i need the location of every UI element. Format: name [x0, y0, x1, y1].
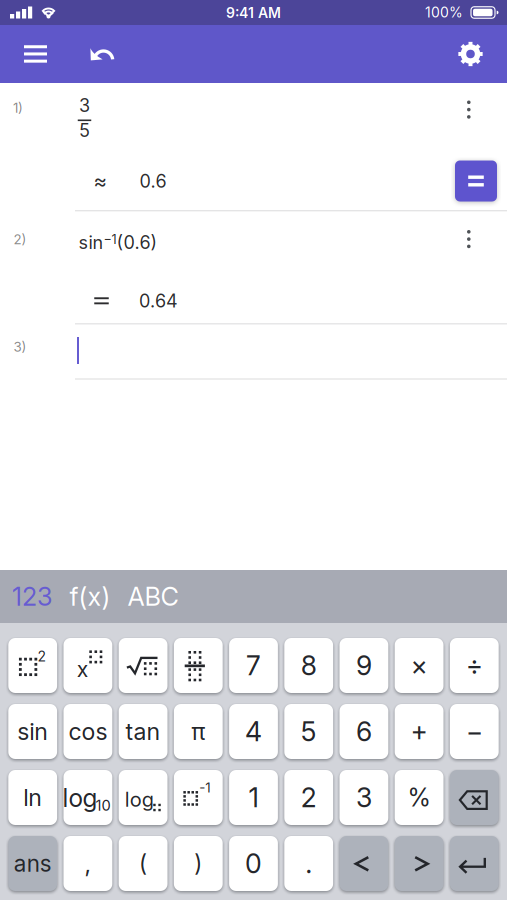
staticText: 1)	[13, 100, 23, 116]
staticText: 7	[246, 649, 261, 682]
button[interactable]: 5	[284, 704, 333, 759]
button[interactable]: 123	[6, 568, 59, 625]
button[interactable]: tan	[119, 704, 167, 759]
button[interactable]: log base 10	[63, 770, 112, 825]
staticText: 8	[301, 649, 317, 682]
staticText: 9:41 AM	[226, 4, 281, 21]
button[interactable]: x squared	[8, 638, 57, 693]
button[interactable]: ×	[395, 638, 443, 693]
button[interactable]: 2	[284, 770, 333, 825]
staticText: 9	[356, 649, 372, 682]
button[interactable]: log base b	[119, 770, 167, 825]
button[interactable]: Delete	[450, 770, 499, 825]
button[interactable]: (	[119, 836, 167, 891]
button[interactable]: ln	[8, 770, 57, 825]
button[interactable]: sin	[8, 704, 57, 759]
staticText: )	[194, 850, 202, 877]
button[interactable]: 3	[339, 770, 388, 825]
button[interactable]: 4	[229, 704, 278, 759]
staticText: 2	[301, 781, 317, 814]
button[interactable]: fraction	[174, 638, 223, 693]
button[interactable]: Move left	[339, 836, 388, 891]
staticText: 123	[12, 581, 53, 612]
staticText: 5	[301, 715, 317, 748]
button[interactable]: 9	[339, 638, 388, 693]
staticText: cos	[68, 717, 107, 746]
staticText: 3	[79, 95, 90, 116]
staticText: x	[77, 656, 89, 682]
button[interactable]: .	[284, 836, 333, 891]
staticText: 10	[96, 797, 111, 814]
staticText: 100%	[425, 4, 463, 21]
staticText: −	[466, 715, 483, 748]
staticText: 0.64	[139, 290, 178, 312]
button[interactable]: Row options	[457, 218, 482, 262]
button[interactable]: Menu	[12, 31, 59, 77]
staticText: log	[62, 783, 97, 813]
staticText: sin−1(0.6)	[78, 232, 157, 253]
staticText: (	[139, 850, 147, 877]
staticText: 0	[245, 847, 262, 880]
button[interactable]: Undo	[78, 31, 128, 77]
button[interactable]: square root	[119, 638, 167, 693]
staticText: tan	[126, 717, 161, 746]
button[interactable]: Move right	[395, 836, 443, 891]
staticText: 4	[245, 715, 262, 748]
staticText: ÷	[466, 649, 483, 682]
staticText: ,	[84, 849, 91, 878]
button[interactable]: 1	[229, 770, 278, 825]
staticText: -1	[199, 779, 210, 796]
button[interactable]: Enter	[450, 836, 499, 891]
staticText: +	[411, 715, 428, 748]
button[interactable]: ans	[8, 836, 57, 891]
button[interactable]: 8	[284, 638, 333, 693]
button[interactable]: 0	[229, 836, 278, 891]
button[interactable]: cos	[63, 704, 112, 759]
button[interactable]: inverse	[174, 770, 223, 825]
staticText: f(x)	[69, 581, 110, 612]
staticText: 2	[37, 648, 46, 665]
button[interactable]: −	[450, 704, 499, 759]
staticText: 2)	[13, 231, 26, 247]
button[interactable]: π	[174, 704, 223, 759]
button[interactable]: ABC	[121, 568, 184, 625]
staticText: 1	[248, 781, 258, 814]
staticText: log	[125, 787, 154, 812]
button[interactable]: ,	[63, 836, 112, 891]
button[interactable]: +	[395, 704, 443, 759]
button[interactable]: Evaluate	[455, 160, 497, 201]
staticText: ×	[411, 649, 428, 682]
staticText: π	[191, 717, 205, 746]
button[interactable]: 7	[229, 638, 278, 693]
staticText: ln	[23, 783, 42, 812]
button[interactable]: )	[174, 836, 223, 891]
staticText: 3)	[13, 339, 26, 355]
staticText: 3	[356, 781, 372, 814]
staticText: ABC	[127, 581, 178, 612]
staticText: .	[305, 847, 312, 880]
staticText: sin	[17, 717, 48, 746]
button[interactable]: 6	[339, 704, 388, 759]
button[interactable]: f(x)	[63, 568, 116, 625]
staticText: ans	[14, 850, 52, 877]
button[interactable]: Settings	[445, 27, 496, 80]
button[interactable]: x to power	[63, 638, 112, 693]
staticText: ≈	[93, 168, 107, 193]
button[interactable]: ÷	[450, 638, 499, 693]
staticText: 6	[356, 715, 372, 748]
button[interactable]: Row options	[457, 88, 482, 132]
staticText: 5	[79, 120, 90, 141]
button[interactable]: %	[395, 770, 443, 825]
staticText: 0.6	[139, 170, 166, 192]
staticText: %	[408, 783, 431, 812]
